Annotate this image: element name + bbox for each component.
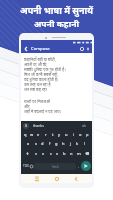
button[interactable]: Hindi [34, 163, 76, 170]
staticText: h [62, 141, 65, 146]
staticText: q [24, 132, 27, 137]
staticText: u [65, 132, 68, 137]
button[interactable]: a [25, 139, 32, 148]
button[interactable]: d [39, 139, 46, 148]
staticText: m [77, 151, 81, 156]
button[interactable]: t [49, 130, 56, 139]
staticText: l [84, 141, 86, 146]
button[interactable]: l [81, 139, 88, 148]
button[interactable]: v [54, 148, 61, 158]
staticText: f [49, 141, 51, 146]
button[interactable]: . [76, 160, 81, 172]
staticText: n [70, 151, 73, 156]
button[interactable]: w [28, 130, 35, 139]
button[interactable]: Backspace [82, 148, 91, 158]
staticText: b [63, 151, 66, 156]
staticText: ok [82, 123, 86, 128]
staticText: y [58, 132, 61, 137]
staticText: g [55, 141, 58, 146]
button[interactable]: Back [21, 45, 92, 53]
staticText: z [35, 151, 37, 156]
button[interactable]: Back [72, 175, 80, 183]
staticText: w [30, 132, 34, 137]
staticText: अपनी कहानी [34, 18, 79, 30]
staticText: i [73, 132, 75, 137]
staticText: . [78, 164, 80, 169]
button[interactable]: p [84, 130, 91, 139]
button[interactable]: g [53, 139, 60, 148]
button[interactable]: q [22, 130, 28, 139]
staticText: t [52, 132, 54, 137]
button[interactable]: b [61, 148, 68, 158]
button[interactable]: j [67, 139, 74, 148]
button[interactable]: i [70, 130, 77, 139]
button[interactable]: h [60, 139, 67, 148]
button[interactable]: o [77, 130, 84, 139]
staticText: s [35, 141, 37, 146]
staticText: Hindi [52, 165, 59, 169]
staticText: j [70, 141, 72, 146]
button[interactable]: s [32, 139, 39, 148]
button[interactable]: e [35, 130, 42, 139]
staticText: v [56, 151, 59, 156]
button[interactable]: Home [53, 175, 61, 183]
button[interactable]: z [32, 148, 40, 158]
staticText: c [50, 151, 52, 156]
button[interactable]: c [47, 148, 54, 158]
button[interactable]: Emoji [29, 160, 34, 172]
staticText: Compose [31, 46, 50, 52]
button[interactable]: r [42, 130, 49, 139]
staticText: o [79, 132, 82, 137]
button[interactable]: ?123 [22, 160, 29, 172]
staticText: d [41, 141, 44, 146]
button[interactable]: Shift [22, 148, 32, 158]
button[interactable]: y [56, 130, 63, 139]
button[interactable]: x [40, 148, 47, 158]
button[interactable]: m [75, 148, 82, 158]
staticText: a [27, 141, 30, 146]
staticText: r [45, 132, 47, 137]
other: Attach [80, 47, 84, 51]
staticText: thanks [33, 123, 44, 128]
button[interactable]: k [74, 139, 81, 148]
staticText: e [37, 132, 40, 137]
staticText: ?123 [23, 164, 29, 168]
staticText: k [76, 141, 79, 146]
staticText: कहानियाँ बड़ी या छोटी, अपनी या औ की, सबक… [24, 57, 66, 92]
button[interactable]: u [63, 130, 70, 139]
staticText: p [86, 132, 89, 137]
button[interactable]: Send [81, 161, 91, 171]
staticText: रास्तों पर मिलताओ और जहाँ में बदलाई न पड… [24, 99, 62, 114]
button[interactable]: Recents [33, 175, 41, 183]
other: Back [24, 47, 28, 51]
staticText: अपनी भाषा में सुनायें [20, 4, 93, 16]
staticText: x [42, 151, 45, 156]
button[interactable]: f [46, 139, 53, 148]
staticText: G [25, 124, 28, 128]
button[interactable]: n [68, 148, 75, 158]
